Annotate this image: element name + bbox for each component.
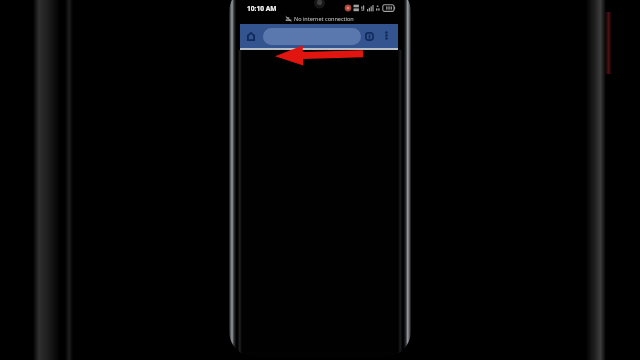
staticText: 10:10 AM [247,4,277,13]
button[interactable]: Search or type web address [263,28,361,45]
button[interactable]: Home [243,28,259,44]
staticText: No internet connection [294,15,354,22]
button[interactable]: Switch tabs [361,28,377,44]
button[interactable]: More options [379,28,394,43]
